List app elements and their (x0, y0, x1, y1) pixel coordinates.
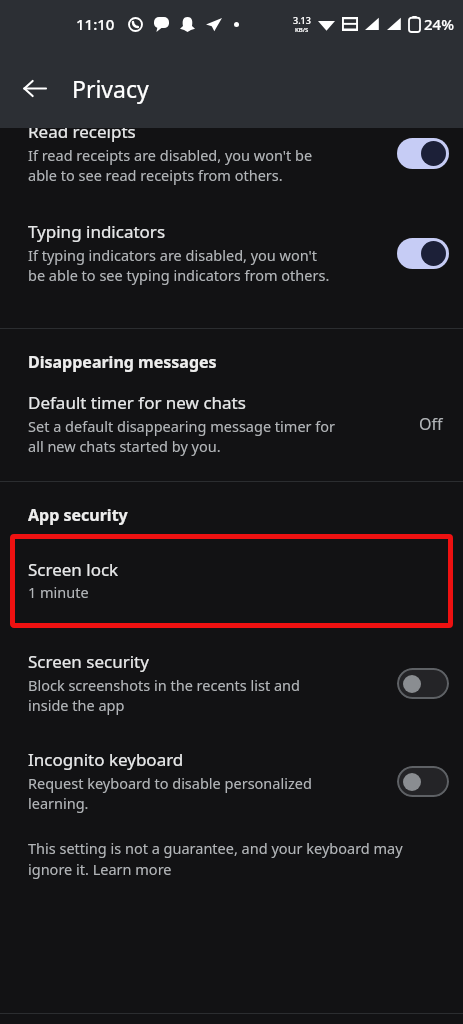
staticText: Set a default disappearing message timer… (28, 416, 336, 457)
staticText: Disappearing messages (28, 351, 217, 373)
staticText: Request keyboard to disable personalized… (28, 773, 312, 814)
staticText: Typing indicators (28, 220, 166, 243)
button[interactable]: Back (10, 64, 58, 112)
button[interactable]: Screen security (0, 632, 463, 732)
staticText: Incognito keyboard (28, 748, 184, 771)
staticText: Default timer for new chats (28, 391, 246, 414)
button[interactable]: Screen lock (10, 534, 453, 628)
staticText: Block screenshots in the recents list an… (28, 675, 300, 716)
button[interactable]: Default timer for new chats (0, 377, 463, 481)
staticText: App security (28, 504, 128, 526)
staticText: Screen security (28, 650, 149, 673)
staticText: KB/S (295, 26, 309, 34)
staticText: Off (419, 413, 443, 435)
staticText: 1 minute (28, 582, 89, 602)
staticText: This setting is not a guarantee, and you… (28, 838, 435, 880)
staticText: Screen lock (28, 558, 119, 581)
staticText: 3.13 (293, 14, 311, 26)
staticText: 11:10 (76, 14, 115, 34)
staticText: 24% (424, 14, 454, 34)
staticText: If read receipts are disabled, you won't… (28, 145, 313, 186)
staticText: If typing indicators are disabled, you w… (28, 245, 330, 286)
button[interactable]: Read receipts (0, 128, 463, 204)
staticText: Privacy (72, 73, 149, 104)
button[interactable]: Incognito keyboard (0, 732, 463, 826)
staticText: Read receipts (28, 128, 136, 143)
button[interactable]: Typing indicators (0, 204, 463, 302)
